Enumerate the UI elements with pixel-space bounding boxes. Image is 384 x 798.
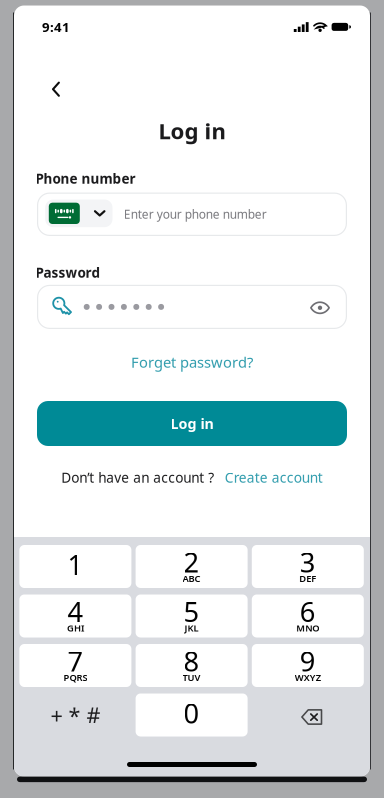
staticText: Password bbox=[35, 263, 100, 282]
staticText: 9 bbox=[300, 642, 316, 679]
button[interactable]: 3 bbox=[252, 545, 364, 588]
staticText: 4 bbox=[67, 593, 83, 630]
staticText: Create account bbox=[225, 468, 323, 487]
staticText: Log in bbox=[158, 116, 225, 146]
button[interactable]: Country code, Saudi Arabia bbox=[45, 199, 112, 227]
staticText: Enter your phone number bbox=[124, 206, 267, 222]
staticText: Forget password? bbox=[131, 352, 253, 372]
button[interactable]: 2 bbox=[136, 545, 248, 588]
button[interactable]: 5 bbox=[136, 594, 248, 637]
staticText: + * # bbox=[50, 700, 100, 730]
staticText: 5 bbox=[184, 593, 200, 630]
button[interactable]: Create account bbox=[225, 468, 323, 487]
staticText: 6 bbox=[300, 593, 316, 630]
button[interactable]: Log in bbox=[37, 401, 347, 446]
button[interactable]: 4 bbox=[19, 594, 131, 637]
staticText: 0 bbox=[184, 694, 200, 731]
button[interactable]: Forget password? bbox=[14, 351, 370, 373]
staticText: 9:41 bbox=[42, 18, 70, 36]
staticText: WXYZ bbox=[295, 671, 321, 684]
staticText: 2 bbox=[184, 543, 200, 580]
button[interactable]: 6 bbox=[252, 594, 364, 637]
staticText: 1 bbox=[67, 546, 83, 583]
button[interactable]: 7 bbox=[19, 644, 131, 687]
staticText: PQRS bbox=[63, 671, 87, 684]
staticText: TUV bbox=[183, 671, 201, 684]
button[interactable]: Plus, asterisk, hash bbox=[19, 693, 131, 736]
staticText: Don’t have an account ? bbox=[61, 468, 214, 487]
staticText: MNO bbox=[296, 622, 319, 634]
staticText: 8 bbox=[184, 642, 200, 679]
button[interactable]: Back bbox=[38, 71, 74, 107]
staticText: JKL bbox=[185, 622, 199, 634]
staticText: DEF bbox=[299, 572, 316, 585]
button[interactable]: 0 bbox=[136, 693, 248, 736]
staticText: GHI bbox=[67, 622, 84, 634]
button[interactable]: Show password bbox=[303, 291, 337, 325]
staticText: ABC bbox=[183, 572, 201, 585]
staticText: Phone number bbox=[35, 169, 135, 188]
staticText: Log in bbox=[170, 414, 213, 433]
staticText: 3 bbox=[300, 543, 316, 580]
button[interactable]: 9 bbox=[252, 644, 364, 687]
staticText: 7 bbox=[67, 642, 83, 679]
button[interactable]: 1 bbox=[19, 545, 131, 588]
button[interactable]: Delete bbox=[252, 693, 364, 736]
button[interactable]: 8 bbox=[136, 644, 248, 687]
